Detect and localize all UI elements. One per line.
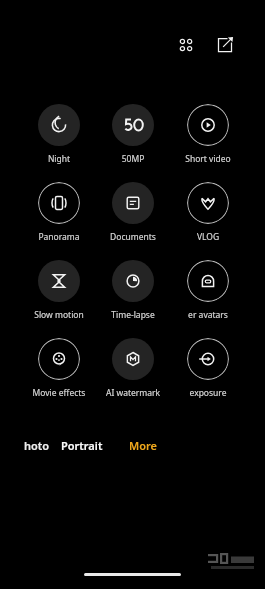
button[interactable]: Night — [22, 104, 96, 170]
staticText: Portrait — [61, 438, 103, 453]
button[interactable]: Super avatars — [171, 260, 245, 326]
staticText: More — [129, 438, 157, 453]
button[interactable]: Camera modes — [174, 33, 198, 57]
button[interactable]: 50MP — [96, 104, 170, 170]
button[interactable]: More — [122, 433, 164, 457]
button[interactable]: Slow motion — [22, 260, 96, 326]
staticText: er avatars — [171, 309, 245, 321]
button[interactable]: Portrait — [54, 433, 110, 457]
button[interactable]: Time-lapse — [96, 260, 170, 326]
staticText: Short video — [171, 153, 245, 165]
button[interactable]: hoto — [0, 433, 50, 457]
button[interactable]: Edit — [213, 33, 237, 57]
staticText: exposure — [171, 387, 245, 399]
button[interactable]: VLOG — [171, 182, 245, 248]
button[interactable]: Movie effects — [22, 338, 96, 404]
staticText: Night — [22, 153, 96, 165]
button[interactable]: AI watermark — [96, 338, 170, 404]
staticText: VLOG — [171, 231, 245, 243]
staticText: Slow motion — [22, 309, 96, 321]
button[interactable]: Panorama — [22, 182, 96, 248]
staticText: 50MP — [96, 153, 170, 165]
staticText: AI watermark — [96, 387, 170, 399]
button[interactable]: Short video — [171, 104, 245, 170]
button[interactable]: Long exposure — [171, 338, 245, 404]
button[interactable]: Documents — [96, 182, 170, 248]
staticText: Movie effects — [22, 387, 96, 399]
staticText: hoto — [24, 438, 50, 453]
staticText: Time-lapse — [96, 309, 170, 321]
staticText: Panorama — [22, 231, 96, 243]
staticText: Documents — [96, 231, 170, 243]
